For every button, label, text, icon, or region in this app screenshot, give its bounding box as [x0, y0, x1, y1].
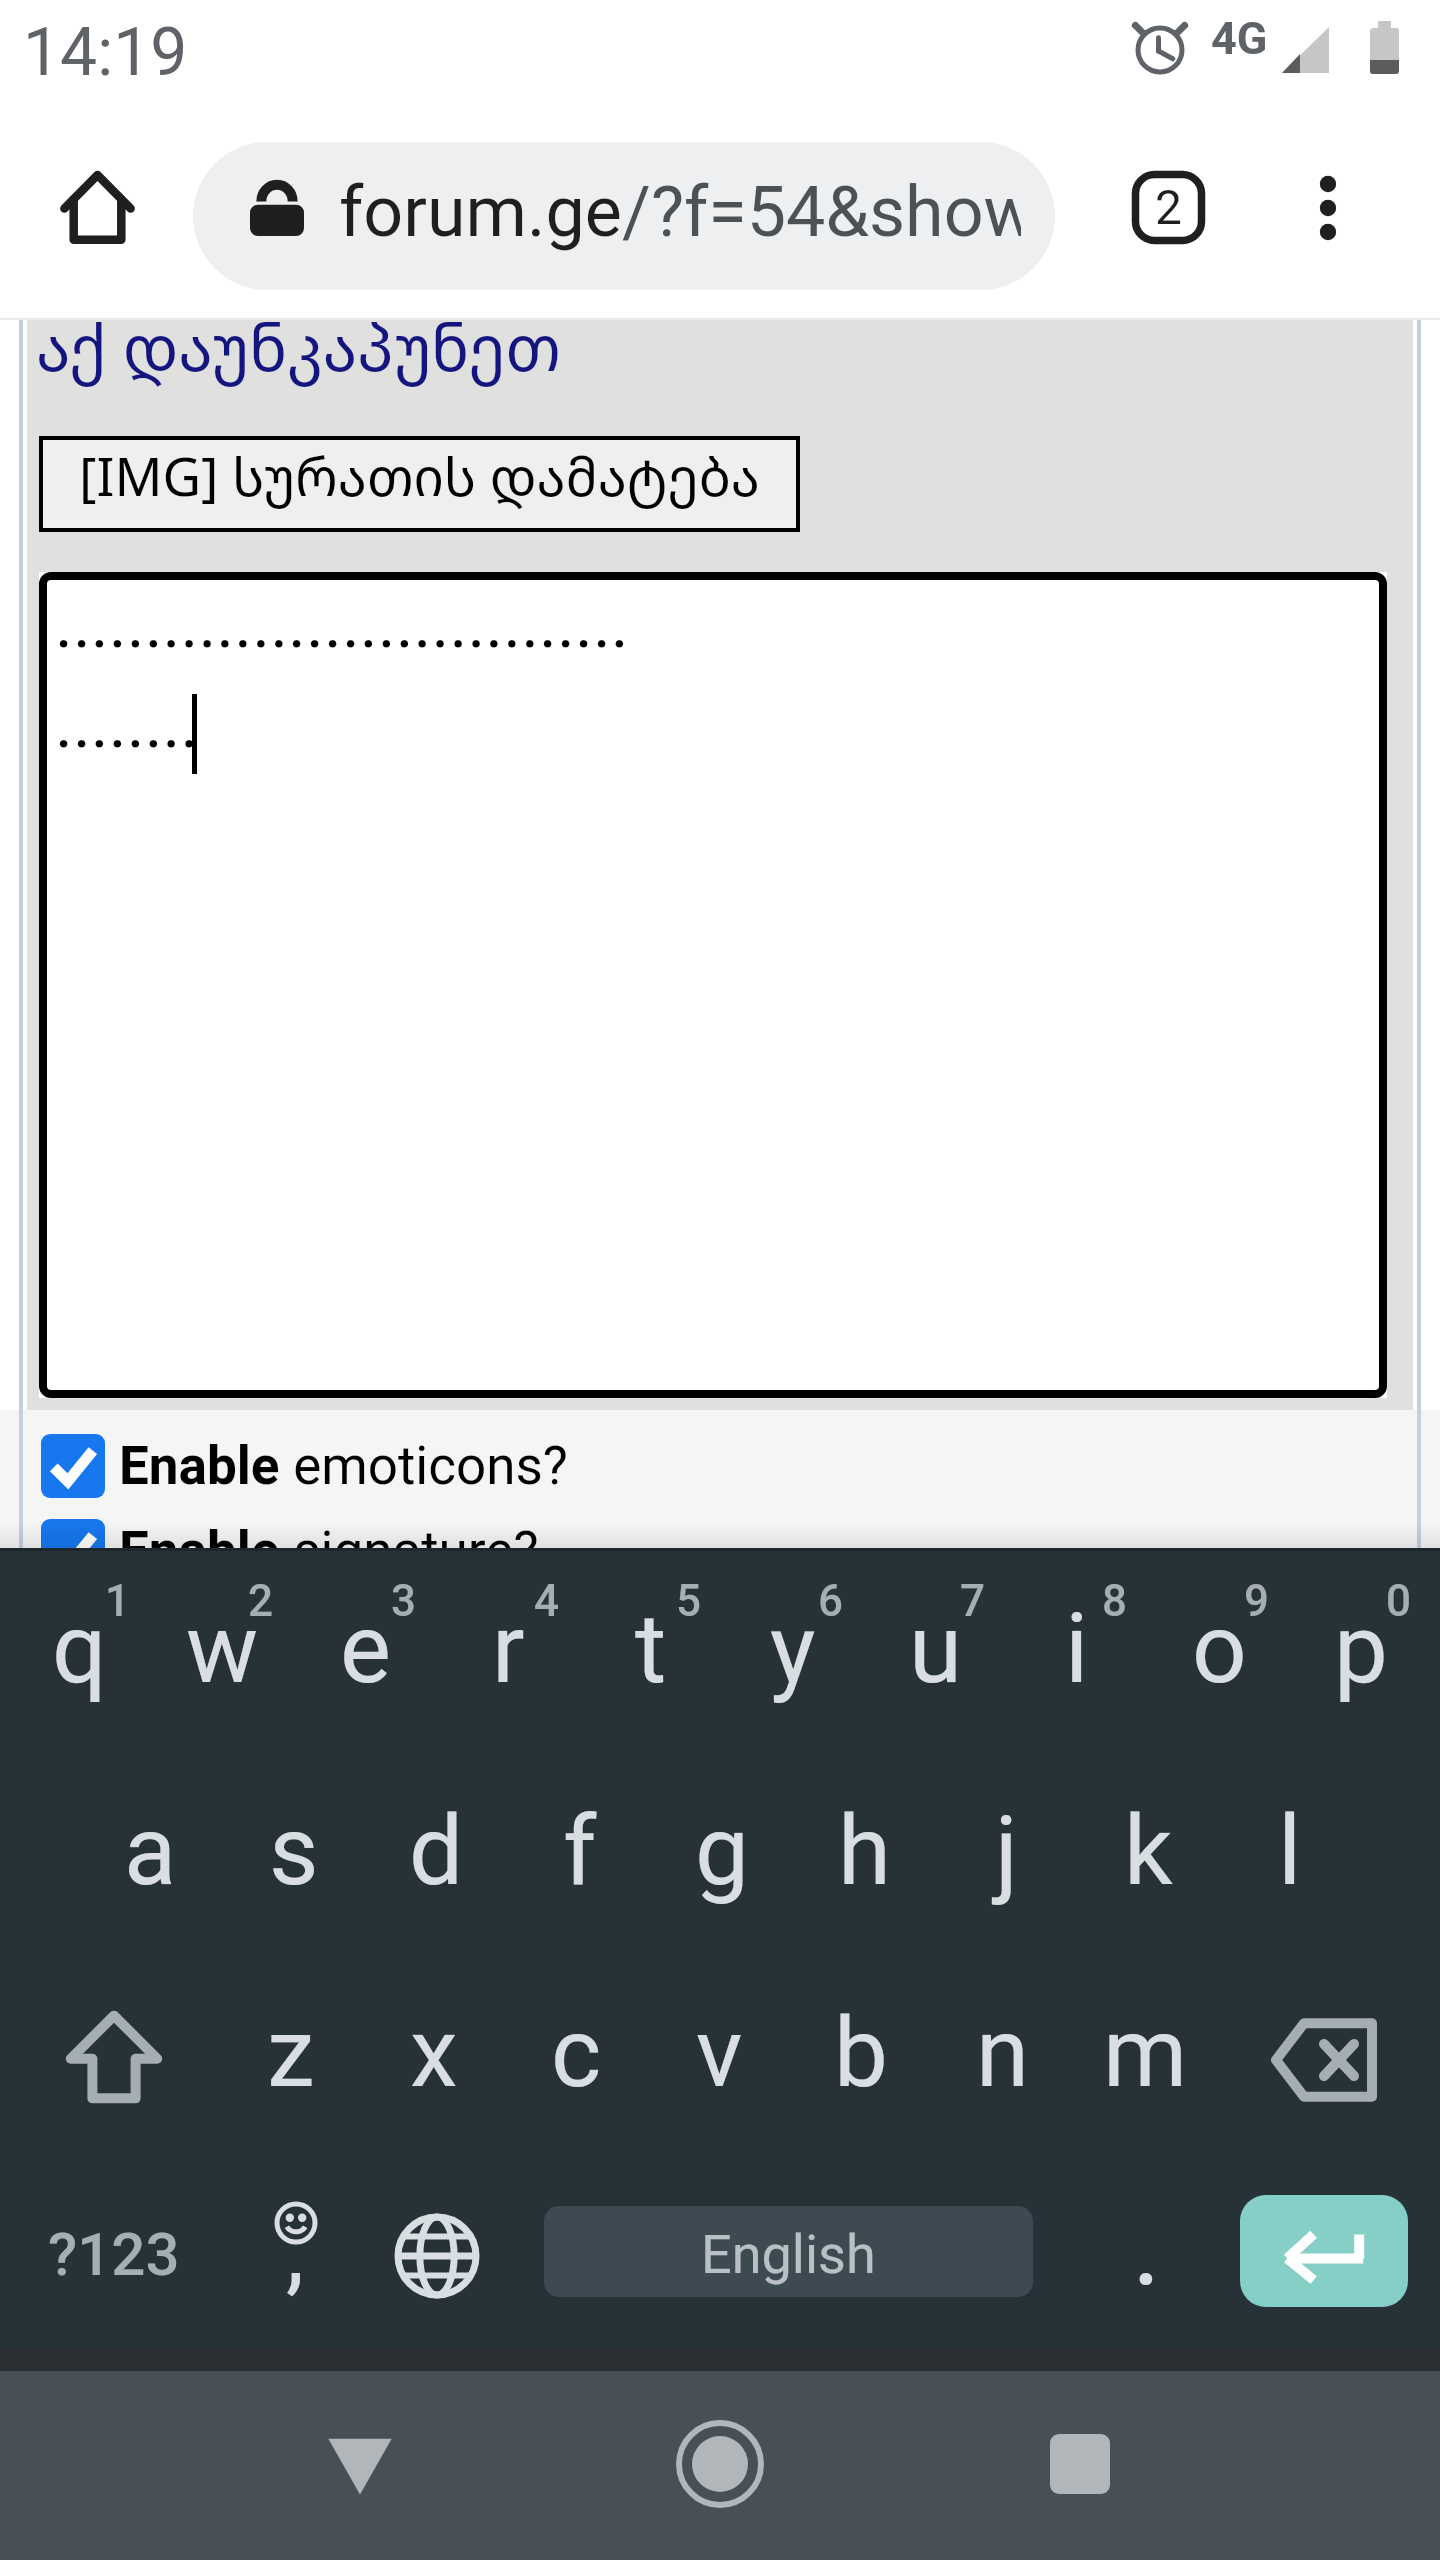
staticText: f	[563, 1795, 597, 1908]
button[interactable]: 1	[8, 1560, 151, 1750]
staticText: Enable	[119, 1520, 280, 1582]
button[interactable]: Recent apps	[990, 2374, 1170, 2554]
staticText: 0	[1386, 1575, 1412, 1627]
button[interactable]: 9	[1148, 1560, 1290, 1750]
button[interactable]: Enable	[41, 1434, 568, 1498]
staticText: Enable	[119, 1435, 280, 1497]
button[interactable]: forum.ge	[193, 142, 1055, 290]
staticText: x	[410, 1997, 458, 2110]
staticText: u	[909, 1593, 962, 1706]
button[interactable]: Enable	[41, 1519, 539, 1583]
button[interactable]: g	[651, 1762, 793, 1952]
staticText: i	[1065, 1593, 1089, 1706]
staticText: /?f=54&show	[622, 171, 1021, 253]
button[interactable]: a	[79, 1762, 222, 1952]
staticText: k	[1124, 1795, 1173, 1908]
button[interactable]: Tabs	[1092, 131, 1245, 284]
staticText: ?123	[48, 2219, 180, 2289]
button[interactable]: f	[508, 1762, 651, 1952]
staticText: 9	[1244, 1575, 1270, 1627]
staticText: m	[1103, 1997, 1188, 2110]
staticText: English	[701, 2223, 876, 2286]
button[interactable]: Change language	[362, 2156, 544, 2346]
staticText: c	[551, 1997, 602, 2110]
staticText: 4G	[1211, 12, 1268, 65]
button[interactable]: b	[790, 1964, 932, 2154]
staticText: 4	[534, 1575, 560, 1627]
staticText: q	[52, 1593, 107, 1706]
button[interactable]: x	[362, 1964, 505, 2154]
staticText: r	[492, 1593, 525, 1706]
button[interactable]: .	[1033, 2156, 1240, 2346]
button[interactable]: m	[1074, 1964, 1216, 2154]
button[interactable]: 2	[151, 1560, 294, 1750]
staticText: o	[1192, 1593, 1247, 1706]
staticText: s	[269, 1795, 319, 1908]
staticText: 5	[676, 1575, 702, 1627]
staticText: v	[696, 1997, 743, 2110]
staticText: აქ დაუნკაპუნეთ	[36, 304, 562, 390]
button[interactable]: l	[1219, 1762, 1361, 1952]
button[interactable]: c	[505, 1964, 648, 2154]
staticText: p	[1334, 1593, 1388, 1706]
button[interactable]: 5	[580, 1560, 722, 1750]
staticText: emoticons?	[280, 1435, 568, 1497]
staticText: 7	[960, 1575, 986, 1627]
button[interactable]: Enter	[1240, 2195, 1408, 2307]
staticText: z	[267, 1997, 315, 2110]
staticText: forum.ge	[339, 171, 622, 253]
staticText: 14:19	[23, 14, 188, 91]
button[interactable]: Home	[26, 137, 166, 277]
staticText: 3	[391, 1575, 417, 1627]
button[interactable]: Shift	[8, 1964, 219, 2154]
button[interactable]: English	[544, 2206, 1033, 2297]
button[interactable]: Backspace	[1216, 1964, 1432, 2154]
button[interactable]: h	[793, 1762, 935, 1952]
staticText: 2	[248, 1575, 274, 1627]
button[interactable]: j	[935, 1762, 1077, 1952]
button[interactable]: n	[932, 1964, 1074, 2154]
button[interactable]: s	[222, 1762, 365, 1952]
staticText: 8	[1102, 1575, 1128, 1627]
staticText: n	[976, 1997, 1030, 2110]
button[interactable]: z	[219, 1964, 362, 2154]
button[interactable]: v	[648, 1964, 790, 2154]
staticText: 2	[1155, 179, 1182, 235]
button[interactable]: k	[1077, 1762, 1219, 1952]
button[interactable]: d	[365, 1762, 508, 1952]
button[interactable]: Emoji	[232, 2156, 362, 2346]
staticText: ,	[286, 2198, 305, 2306]
button[interactable]: ?123	[0, 2156, 232, 2346]
staticText: d	[409, 1795, 464, 1908]
staticText: j	[995, 1795, 1018, 1908]
staticText: e	[340, 1593, 391, 1706]
staticText: ........	[55, 684, 199, 764]
staticText: .	[1132, 2182, 1162, 2311]
staticText: h	[838, 1795, 891, 1908]
button[interactable]: 0	[1290, 1560, 1432, 1750]
staticText: l	[1278, 1795, 1302, 1908]
staticText: [IMG] სურათის დამატება	[79, 439, 760, 511]
button[interactable]: 8	[1006, 1560, 1148, 1750]
button[interactable]: 4	[437, 1560, 580, 1750]
button[interactable]: More options	[1248, 132, 1408, 292]
staticText: w	[186, 1593, 259, 1706]
staticText: g	[695, 1795, 749, 1908]
button[interactable]: 3	[294, 1560, 437, 1750]
button[interactable]: [IMG] სურათის დამატება	[39, 436, 800, 532]
button[interactable]: Back	[270, 2376, 450, 2556]
staticText: 6	[818, 1575, 844, 1627]
staticText: b	[834, 1997, 888, 2110]
button[interactable]: Home	[630, 2374, 810, 2554]
staticText: ................................	[55, 584, 629, 664]
staticText: y	[770, 1593, 816, 1706]
button[interactable]: 6	[722, 1560, 864, 1750]
staticText: 1	[105, 1575, 131, 1627]
button[interactable]: 7	[864, 1560, 1006, 1750]
staticText: signature?	[280, 1520, 539, 1582]
staticText: t	[635, 1593, 667, 1706]
staticText: a	[124, 1795, 177, 1908]
